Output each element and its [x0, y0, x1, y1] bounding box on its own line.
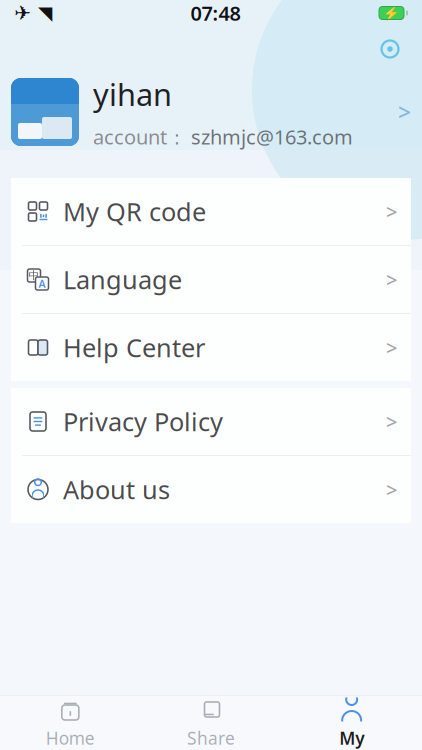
button[interactable]: yihan	[0, 74, 422, 150]
staticText: >	[386, 476, 397, 503]
staticText: Share	[187, 726, 235, 749]
staticText: szhmjc@163.com	[191, 124, 353, 150]
staticText: My QR code	[63, 195, 206, 228]
staticText: Home	[46, 726, 95, 749]
staticText: >	[386, 408, 397, 435]
button[interactable]: My	[281, 696, 422, 750]
staticText: My	[339, 726, 364, 749]
button[interactable]: Settings	[370, 32, 410, 66]
staticText: >	[386, 198, 397, 225]
button[interactable]: Help Center	[11, 314, 411, 381]
staticText: >	[386, 266, 397, 293]
staticText: ◥	[38, 2, 52, 24]
staticText: >	[386, 334, 397, 361]
button[interactable]: Share	[141, 696, 281, 750]
staticText: ⚡	[383, 5, 400, 21]
button[interactable]: Privacy Policy	[11, 388, 411, 455]
staticText: About us	[63, 473, 170, 506]
button[interactable]: 中	[11, 246, 411, 313]
staticText: account：	[93, 123, 187, 150]
staticText: 07:48	[190, 0, 240, 26]
staticText: Privacy Policy	[63, 405, 223, 438]
staticText: Help Center	[63, 331, 205, 364]
button[interactable]: Home	[0, 696, 141, 750]
staticText: ✈	[14, 2, 31, 24]
staticText: A	[38, 276, 45, 291]
button[interactable]: My QR code	[11, 178, 411, 245]
button[interactable]: About us	[11, 456, 411, 523]
staticText: >	[398, 97, 411, 127]
staticText: yihan	[93, 74, 172, 114]
staticText: 中	[28, 269, 39, 282]
staticText: Language	[63, 263, 182, 296]
